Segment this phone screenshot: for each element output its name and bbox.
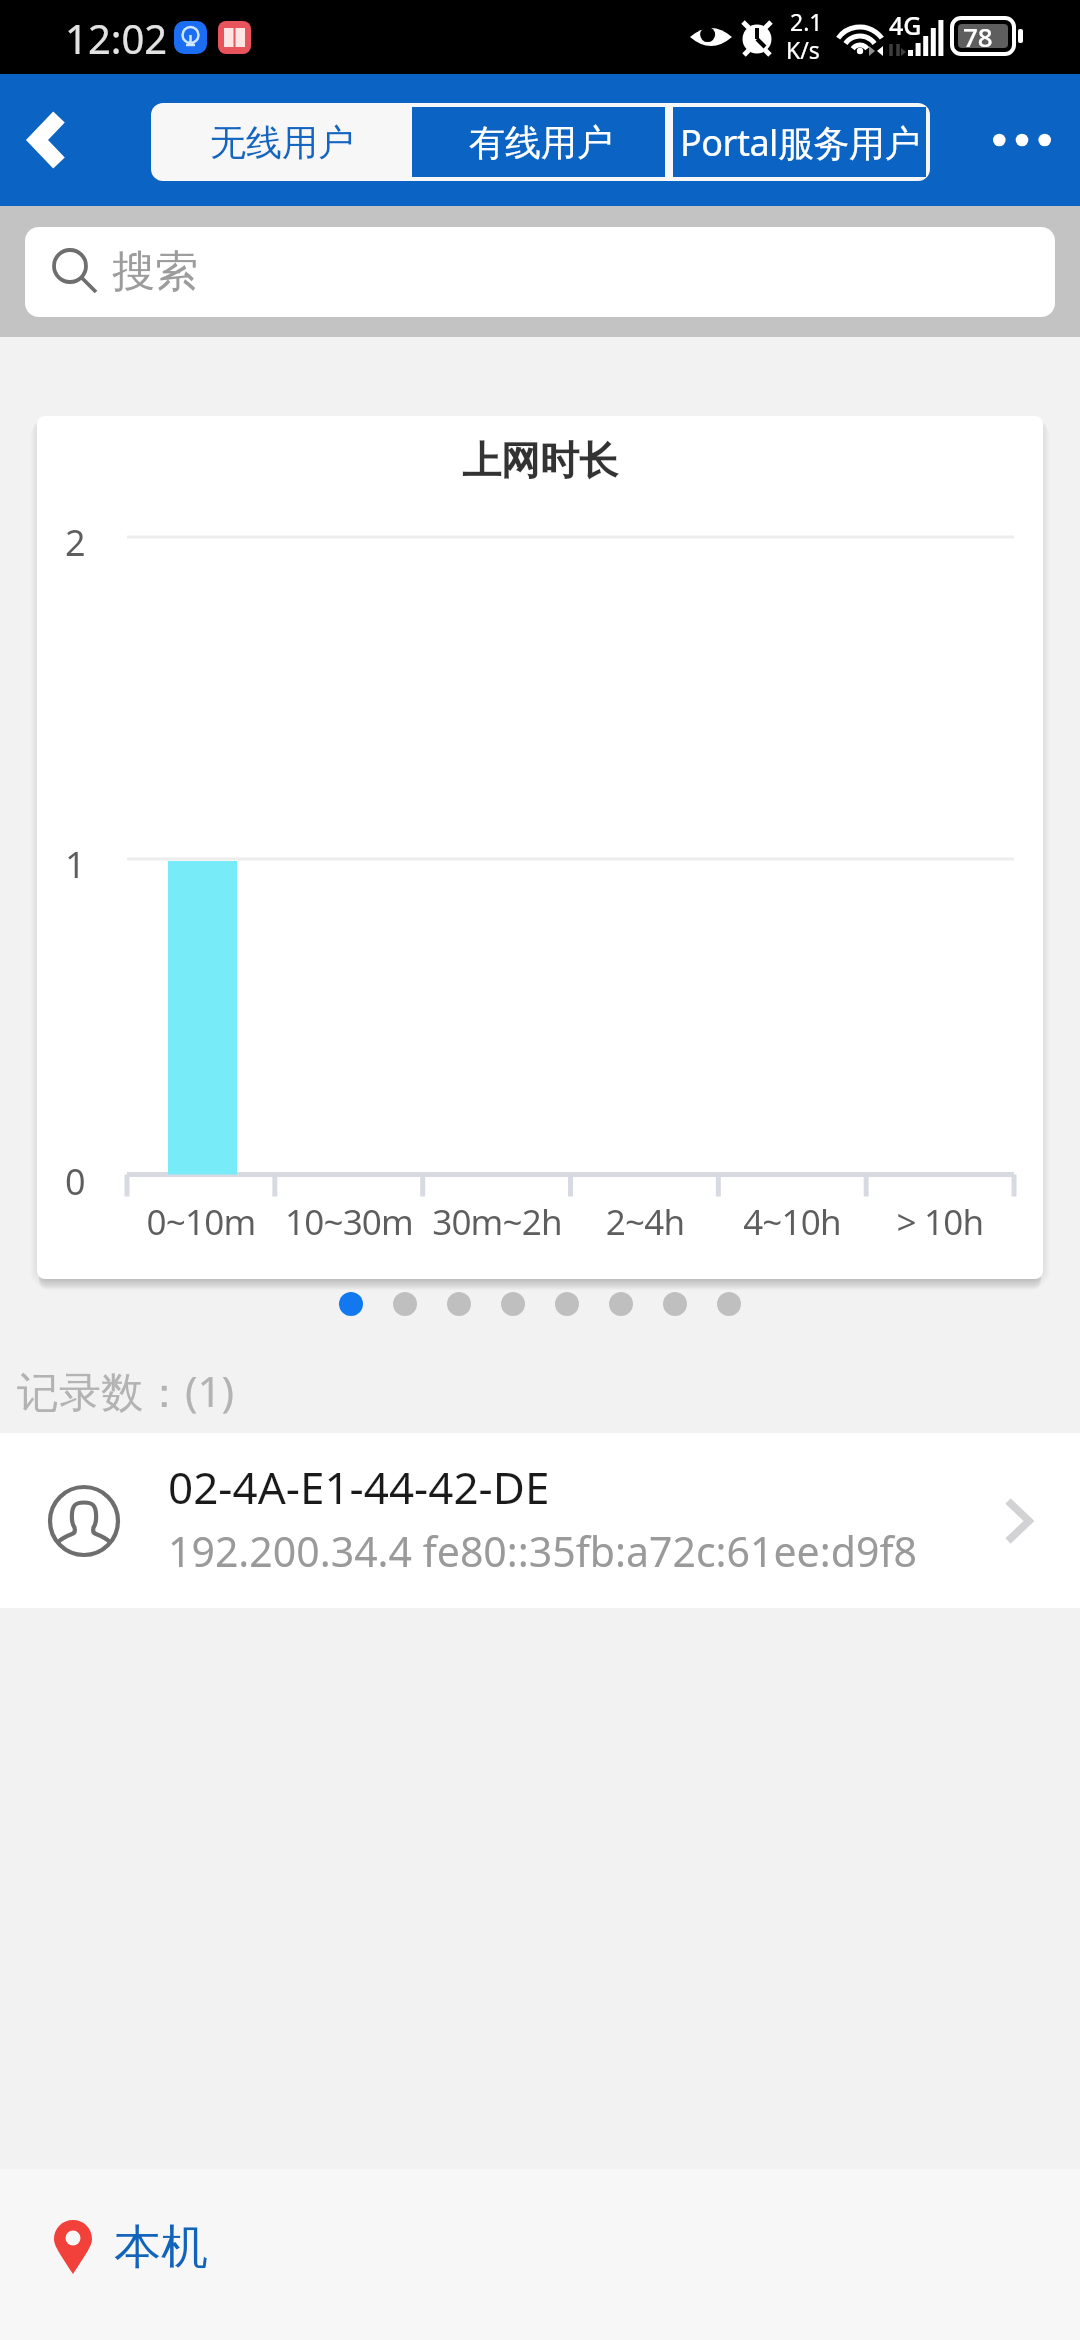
staticText: 30m~2h bbox=[423, 1198, 571, 1246]
staticText: 有线用户 bbox=[469, 120, 613, 165]
button[interactable]: 本机 bbox=[54, 2207, 254, 2287]
staticText: 10~30m bbox=[275, 1198, 423, 1246]
button[interactable]: Portal服务用户 bbox=[669, 103, 930, 181]
button[interactable]: 无线用户 bbox=[151, 103, 412, 181]
staticText: > 10h bbox=[866, 1198, 1014, 1246]
staticText: 0~10m bbox=[127, 1198, 275, 1246]
button[interactable]: 有线用户 bbox=[412, 103, 669, 181]
staticText: 4~10h bbox=[718, 1198, 866, 1246]
staticText: 2~4h bbox=[571, 1198, 719, 1246]
staticText: 4G bbox=[889, 8, 922, 42]
button[interactable]: 搜索 bbox=[25, 227, 1055, 317]
staticText: 2 bbox=[65, 518, 86, 567]
staticText: 记录数：(1) bbox=[17, 1362, 235, 1419]
button[interactable]: More options bbox=[964, 83, 1080, 197]
staticText: 02-4A-E1-44-42-DE bbox=[168, 1457, 550, 1517]
staticText: 0 bbox=[65, 1157, 86, 1206]
button[interactable]: 02-4A-E1-44-42-DE bbox=[0, 1433, 1080, 1608]
staticText: 1 bbox=[65, 840, 86, 889]
staticText: 78 bbox=[963, 19, 993, 54]
staticText: 192.200.34.4 fe80::35fb:a72c:61ee:d9f8 bbox=[168, 1523, 917, 1579]
staticText: 本机 bbox=[114, 2218, 208, 2277]
staticText: 搜索 bbox=[112, 245, 198, 299]
staticText: Portal服务用户 bbox=[680, 118, 920, 167]
staticText: 2.1 bbox=[790, 6, 823, 37]
staticText: 12:02 bbox=[65, 11, 168, 65]
staticText: K/s bbox=[786, 34, 820, 65]
button[interactable]: Back bbox=[0, 77, 110, 203]
staticText: 上网时长 bbox=[37, 436, 1043, 485]
staticText: 无线用户 bbox=[210, 120, 354, 165]
